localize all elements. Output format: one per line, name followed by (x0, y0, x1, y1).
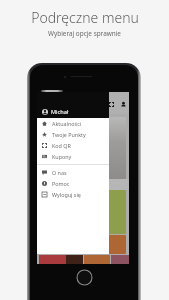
staticText: Michał (51, 108, 69, 116)
button[interactable]: Michał (37, 92, 109, 118)
staticText: Podręczne menu (31, 8, 139, 27)
staticText: Twoje Punkty (52, 131, 86, 138)
button[interactable]: Home (76, 269, 93, 286)
button[interactable]: Aktualności (37, 118, 109, 129)
button[interactable]: Kupony (37, 151, 109, 162)
button[interactable]: Wyloguj się (37, 189, 109, 200)
button[interactable]: Twoje Punkty (37, 129, 109, 140)
staticText: Wyloguj się (52, 191, 81, 198)
staticText: Wybieraj opcje sprawnie (48, 29, 121, 38)
staticText: O nas (52, 169, 67, 176)
staticText: Pomoc (52, 180, 70, 187)
button[interactable]: Account (118, 99, 129, 110)
button[interactable]: Pomoc (37, 178, 109, 189)
staticText: Aktualności (52, 120, 82, 127)
staticText: Kupony (52, 153, 72, 160)
button[interactable]: Kod QR (37, 140, 109, 151)
button[interactable]: O nas (37, 167, 109, 178)
staticText: Kod QR (52, 142, 71, 149)
button[interactable]: Scan QR code (106, 99, 117, 110)
